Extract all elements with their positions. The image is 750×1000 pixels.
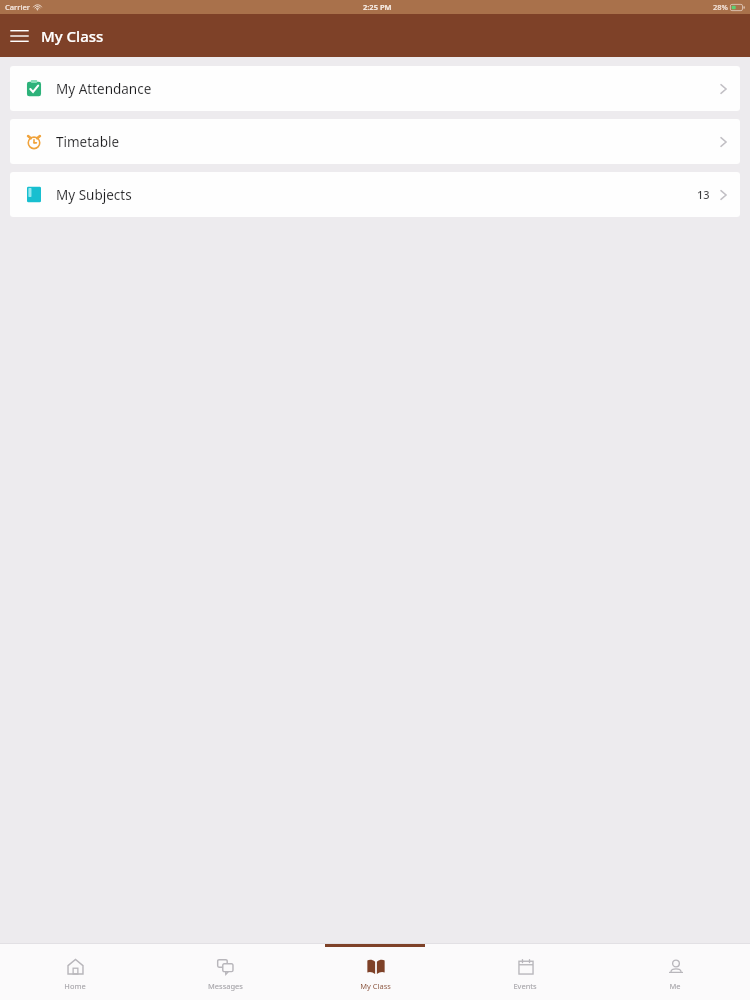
button[interactable]: My Attendance [10, 66, 740, 111]
staticText: My Attendance [56, 80, 152, 98]
button[interactable]: Messages [150, 944, 300, 1000]
button[interactable]: Menu [8, 25, 30, 47]
button[interactable]: Me [600, 944, 750, 1000]
staticText: Events [513, 981, 537, 991]
staticText: Messages [208, 981, 243, 991]
staticText: 2:25 PM [363, 2, 392, 12]
button[interactable]: Events [450, 944, 600, 1000]
staticText: 13 [697, 187, 710, 202]
staticText: Me [669, 981, 681, 991]
staticText: My Subjects [56, 186, 132, 204]
button[interactable]: My Class [300, 944, 450, 1000]
button[interactable]: Timetable [10, 119, 740, 164]
staticText: Timetable [56, 133, 120, 151]
staticText: Home [64, 981, 86, 991]
button[interactable]: Home [0, 944, 150, 1000]
button[interactable]: My Subjects [10, 172, 740, 217]
staticText: 28% [713, 2, 728, 12]
staticText: My Class [41, 26, 104, 46]
staticText: My Class [360, 981, 391, 991]
staticText: Carrier [5, 2, 30, 12]
